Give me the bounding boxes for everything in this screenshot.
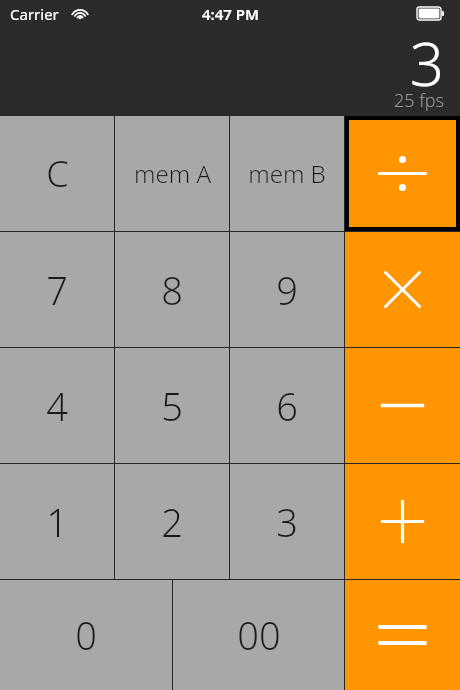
staticText: Carrier bbox=[10, 4, 59, 24]
button[interactable]: 4 bbox=[0, 348, 114, 463]
staticText: 5 bbox=[161, 380, 183, 432]
staticText: 4:47 PM bbox=[202, 4, 259, 24]
button[interactable]: 6 bbox=[230, 348, 344, 463]
staticText: 6 bbox=[276, 380, 298, 432]
button[interactable]: 9 bbox=[230, 232, 344, 347]
button[interactable]: 1 bbox=[0, 464, 114, 579]
button[interactable]: 5 bbox=[115, 348, 229, 463]
button[interactable]: 8 bbox=[115, 232, 229, 347]
button[interactable]: C bbox=[0, 116, 114, 231]
button[interactable]: 7 bbox=[0, 232, 114, 347]
staticText: mem A bbox=[134, 157, 211, 190]
button[interactable]: Equals bbox=[345, 580, 460, 690]
button[interactable]: 0 bbox=[0, 580, 172, 690]
button[interactable]: mem B bbox=[230, 116, 344, 231]
staticText: 3 bbox=[409, 22, 444, 104]
button[interactable]: Add bbox=[345, 464, 460, 579]
staticText: mem B bbox=[248, 157, 326, 190]
button[interactable]: Subtract bbox=[345, 348, 460, 463]
staticText: 25 fps bbox=[393, 88, 444, 113]
staticText: C bbox=[46, 149, 69, 198]
button[interactable]: 2 bbox=[115, 464, 229, 579]
button[interactable]: 00 bbox=[173, 580, 344, 690]
button[interactable]: 3 bbox=[230, 464, 344, 579]
staticText: 8 bbox=[161, 264, 183, 316]
staticText: 4 bbox=[46, 380, 68, 432]
staticText: 3 bbox=[276, 496, 298, 548]
staticText: 00 bbox=[237, 609, 281, 661]
staticText: 2 bbox=[161, 496, 183, 548]
button[interactable]: mem A bbox=[115, 116, 229, 231]
staticText: 0 bbox=[75, 609, 97, 661]
staticText: 9 bbox=[276, 264, 298, 316]
staticText: 7 bbox=[46, 264, 68, 316]
button[interactable]: Multiply bbox=[345, 232, 460, 347]
staticText: 1 bbox=[46, 496, 68, 548]
button[interactable]: Divide bbox=[345, 116, 460, 231]
